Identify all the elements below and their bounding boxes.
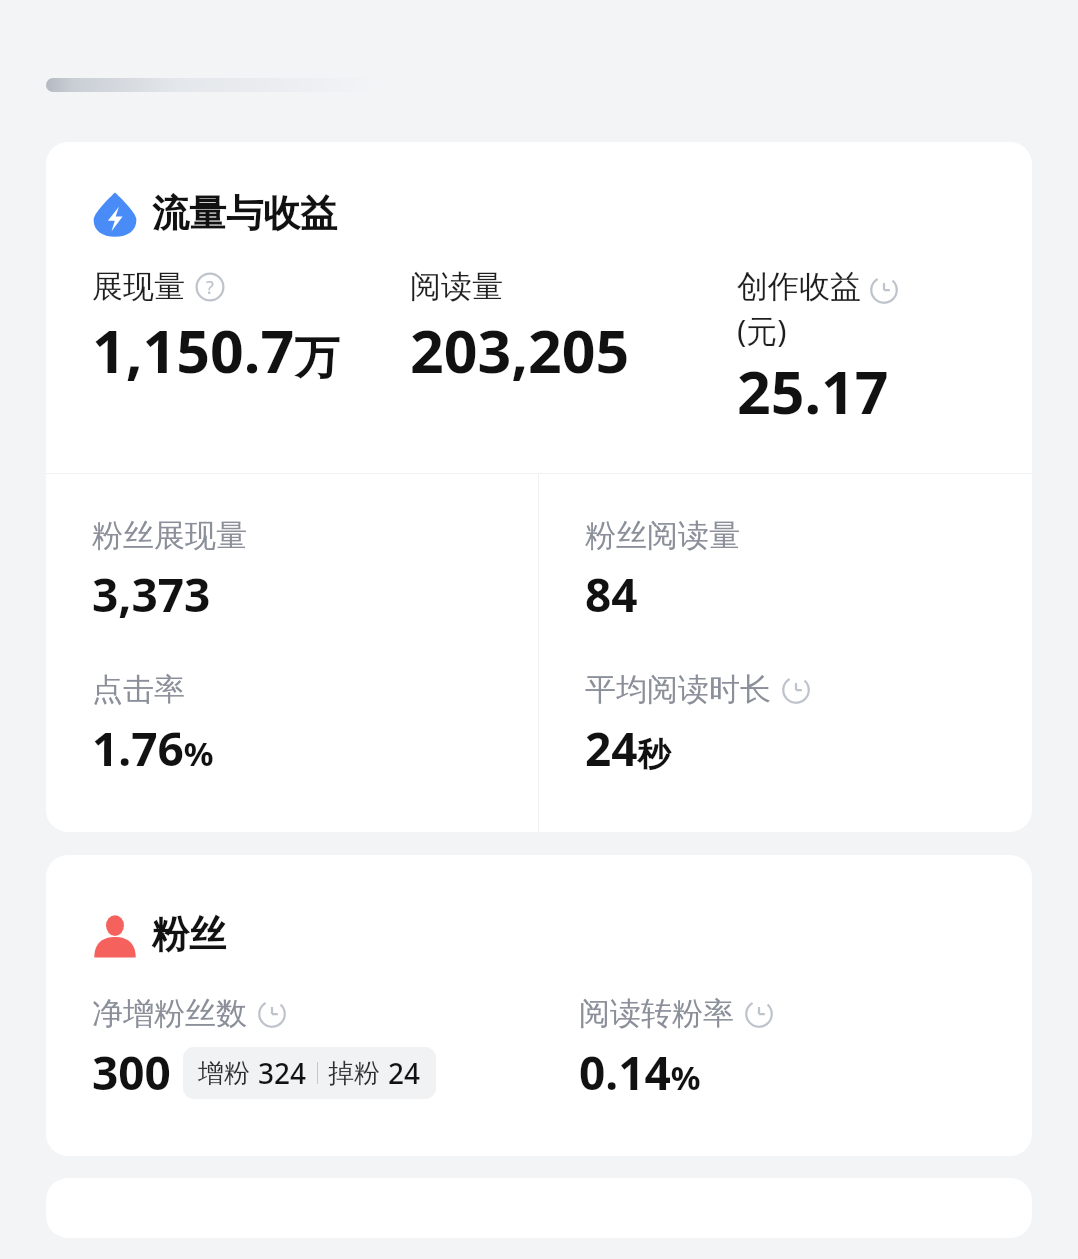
staticText: 25.17 — [737, 351, 889, 431]
staticText: 1,150.7万 — [92, 310, 340, 390]
staticText: 增粉 — [198, 1057, 250, 1090]
staticText: 1.76% — [92, 717, 214, 780]
button[interactable]: 平均阅读时长 — [585, 670, 811, 780]
button[interactable]: 粉丝 — [92, 911, 226, 958]
button[interactable]: 粉丝展现量 — [92, 516, 247, 626]
staticText: 掉粉 — [328, 1057, 380, 1090]
staticText: 流量与收益 — [152, 190, 337, 237]
staticText: 展现量 — [92, 267, 185, 306]
other: Delayed data — [744, 999, 774, 1029]
staticText: 0.14% — [579, 1041, 701, 1104]
staticText: 平均阅读时长 — [585, 670, 771, 709]
button[interactable]: Help — [195, 272, 225, 302]
staticText: 324 — [258, 1054, 307, 1092]
staticText: ? — [206, 275, 214, 300]
other: Delayed data — [257, 999, 287, 1029]
staticText: 净增粉丝数 — [92, 994, 247, 1033]
staticText: 阅读量 — [410, 267, 503, 306]
staticText: 203,205 — [410, 310, 630, 390]
button[interactable]: 阅读转粉率 — [579, 994, 998, 1104]
button[interactable]: 增粉 — [183, 1047, 436, 1099]
button[interactable]: 创作收益 (元) — [737, 267, 998, 431]
button[interactable]: 点击率 — [92, 670, 214, 780]
other: Delayed data — [869, 275, 899, 305]
staticText: 创作收益 (元) — [737, 267, 861, 351]
staticText: 84 — [585, 563, 638, 626]
button[interactable]: 阅读量 — [410, 267, 737, 390]
button[interactable]: 展现量 — [92, 267, 410, 390]
staticText: 3,373 — [92, 563, 211, 626]
other: Delayed data — [781, 675, 811, 705]
staticText: 粉丝 — [152, 911, 226, 958]
button[interactable]: 流量与收益 — [92, 190, 337, 237]
staticText: 粉丝展现量 — [92, 516, 247, 555]
staticText: 点击率 — [92, 670, 185, 709]
staticText: 24秒 — [585, 717, 671, 780]
staticText: 粉丝阅读量 — [585, 516, 740, 555]
button[interactable]: 粉丝阅读量 — [585, 516, 740, 626]
button[interactable]: 净增粉丝数 — [92, 994, 579, 1104]
staticText: 300 — [92, 1041, 171, 1104]
staticText: 阅读转粉率 — [579, 994, 734, 1033]
staticText: 24 — [388, 1054, 421, 1092]
